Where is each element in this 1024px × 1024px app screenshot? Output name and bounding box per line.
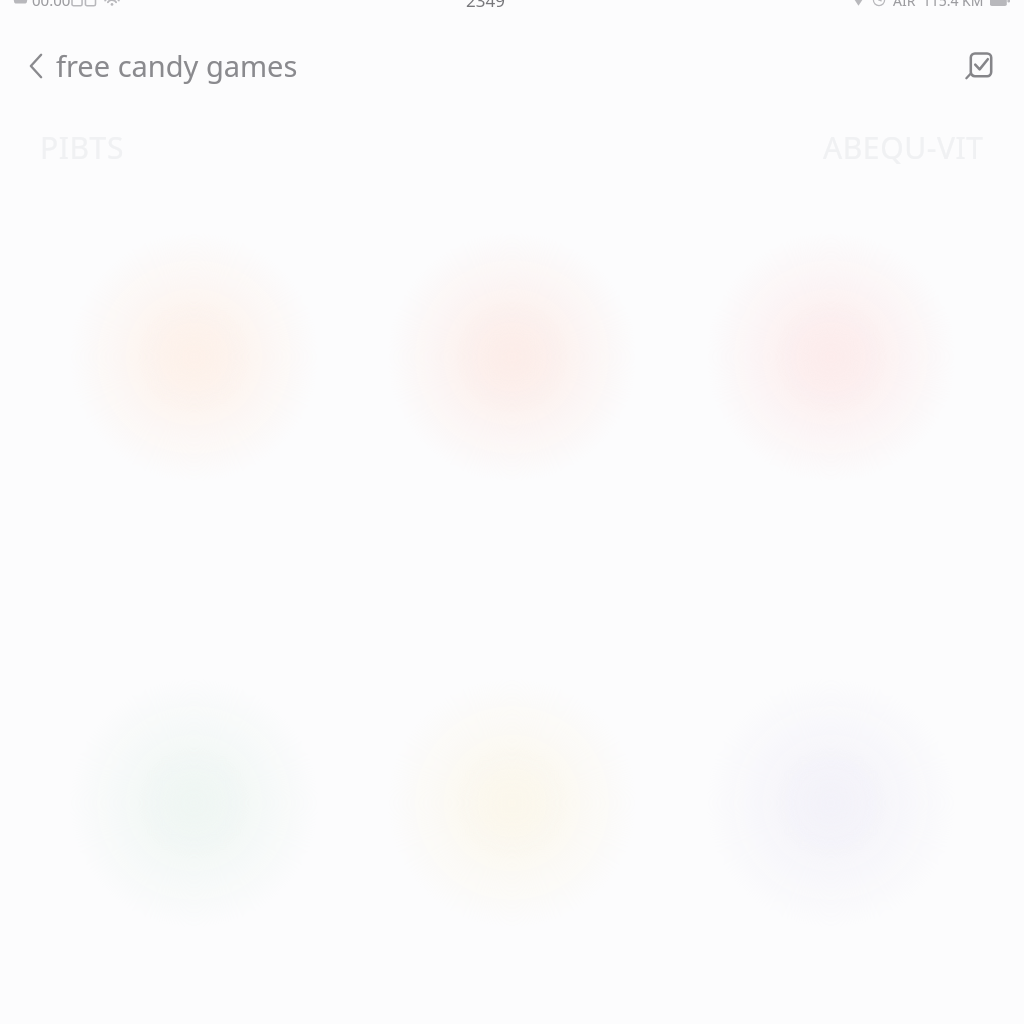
staticText: ABEQU-VIT xyxy=(823,127,984,168)
staticText: 2349 xyxy=(466,0,505,11)
button[interactable]: App one xyxy=(69,232,319,482)
button[interactable]: App two xyxy=(387,232,637,482)
button[interactable]: free candy games xyxy=(14,36,312,95)
staticText: AIR 115.4 KM xyxy=(893,0,984,10)
button[interactable]: Select all xyxy=(952,37,1010,95)
staticText: PIBTS xyxy=(40,127,124,168)
button[interactable]: App four xyxy=(69,678,319,928)
staticText: 00:00 xyxy=(32,0,71,10)
button[interactable]: App three xyxy=(706,232,956,482)
staticText: free candy games xyxy=(56,46,298,85)
button[interactable]: App five xyxy=(387,678,637,928)
